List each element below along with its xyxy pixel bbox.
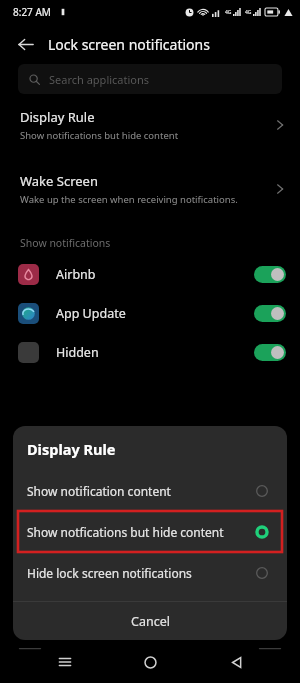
staticText: App Update [56, 305, 254, 322]
button[interactable]: Hidden [0, 342, 300, 363]
button[interactable]: Cancel [13, 602, 287, 640]
staticText: 4G [245, 9, 252, 16]
button[interactable]: Show notification content [13, 470, 287, 511]
staticText: Show notfications but hide content [27, 524, 255, 540]
staticText: Cancel [131, 613, 170, 630]
staticText: Show notification content [27, 483, 255, 499]
button[interactable]: Home [129, 641, 171, 683]
staticText: Display Rule [20, 108, 95, 126]
staticText: Show notifications [20, 236, 111, 250]
staticText: Search applications [49, 72, 150, 87]
button[interactable]: Back [8, 27, 42, 61]
staticText: Airbnb [56, 266, 254, 283]
button[interactable]: Toggle [254, 344, 286, 361]
button[interactable]: Show notfications but hide content [18, 511, 282, 552]
button[interactable]: App Update [0, 303, 300, 324]
button[interactable]: Back [215, 641, 257, 683]
staticText: Show notifications but hide content [20, 129, 179, 142]
button[interactable]: Toggle [254, 305, 286, 322]
staticText: Hidden [56, 344, 254, 361]
staticText: Lock screen notifications [48, 35, 210, 54]
button[interactable]: Toggle [254, 266, 286, 283]
staticText: Display Rule [27, 439, 116, 459]
button[interactable]: Wake Screen [0, 164, 300, 214]
button[interactable]: Recent apps [44, 641, 86, 683]
button[interactable]: Airbnb [0, 264, 300, 285]
button[interactable]: Display Rule [0, 100, 300, 150]
staticText: 4G [225, 9, 232, 16]
button[interactable]: Hide lock screen notifications [13, 552, 287, 593]
staticText: Wake up the screen when receiving notifi… [20, 193, 238, 206]
button[interactable]: Search applications [18, 64, 282, 94]
staticText: Wake Screen [20, 172, 98, 190]
staticText: Hide lock screen notifications [27, 565, 255, 581]
staticText: 8:27 AM [13, 5, 51, 19]
